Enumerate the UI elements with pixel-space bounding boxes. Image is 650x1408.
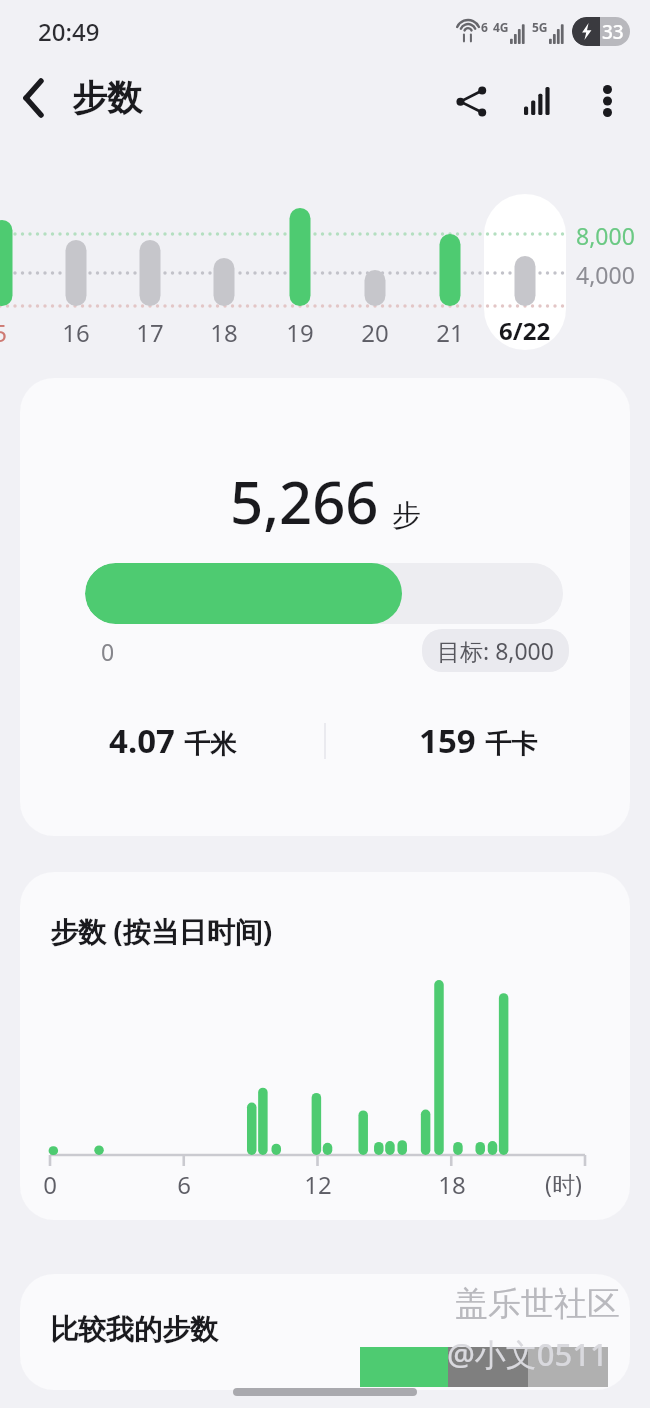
button[interactable]: Chart view <box>508 70 570 132</box>
staticText: 6 <box>177 1168 191 1201</box>
staticText: 159 <box>419 718 476 763</box>
staticText: 步 <box>392 497 421 534</box>
staticText: 比较我的步数 <box>50 1312 218 1347</box>
staticText: 18 <box>210 316 238 349</box>
button[interactable]: Back <box>0 64 68 132</box>
staticText: 19 <box>286 316 314 349</box>
staticText: 6/22 <box>499 314 551 347</box>
staticText: 20 <box>361 316 389 349</box>
staticText: 步数 <box>72 76 142 120</box>
staticText: 0 <box>101 636 115 667</box>
staticText: 5G <box>532 19 548 35</box>
staticText: 步数 (按当日时间) <box>50 912 273 950</box>
staticText: 5 <box>0 316 7 349</box>
button[interactable]: More options <box>576 70 638 132</box>
staticText: (时) <box>545 1168 582 1199</box>
staticText: 8,000 <box>576 220 635 251</box>
staticText: 20:49 <box>38 15 100 48</box>
button[interactable] <box>484 194 566 350</box>
button[interactable]: 4.07 <box>20 718 324 763</box>
staticText: 18 <box>438 1168 466 1201</box>
staticText: 4G <box>493 19 509 35</box>
staticText: 16 <box>62 316 90 349</box>
staticText: 目标: 8,000 <box>437 635 554 666</box>
staticText: 17 <box>136 316 164 349</box>
staticText: 12 <box>304 1168 332 1201</box>
staticText: @小文0511 <box>447 1333 608 1375</box>
button[interactable]: 比较我的步数 <box>20 1274 630 1390</box>
button[interactable]: 159 <box>326 718 630 763</box>
staticText: 0 <box>43 1168 57 1201</box>
staticText: 盖乐世社区 <box>455 1283 620 1325</box>
button[interactable]: 步数 (按当日时间) <box>20 872 630 1220</box>
staticText: 33 <box>602 19 624 45</box>
staticText: 千米 <box>184 728 236 761</box>
button[interactable]: 5,266 <box>20 378 630 836</box>
staticText: 千卡 <box>485 728 537 761</box>
staticText: 5,266 <box>230 462 379 541</box>
staticText: 4.07 <box>109 718 175 763</box>
button[interactable]: Share <box>440 70 502 132</box>
staticText: 6 <box>481 19 488 35</box>
staticText: 21 <box>436 316 464 349</box>
staticText: 4,000 <box>576 259 635 290</box>
